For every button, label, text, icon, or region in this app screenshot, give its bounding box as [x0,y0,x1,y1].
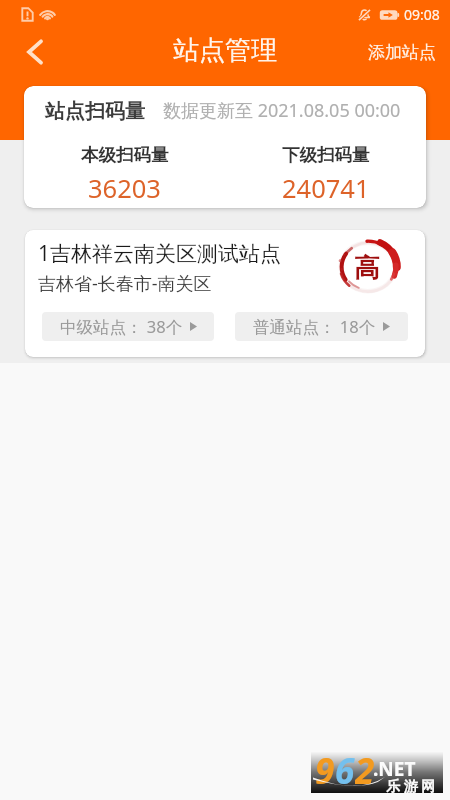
button[interactable]: Back [10,28,60,76]
staticText: 普通站点： 18个 [253,315,376,338]
staticText: 中级站点： 38个 [60,315,183,338]
staticText: 站点扫码量 [45,99,145,124]
button[interactable]: 中级站点： 38个 [42,312,214,341]
button[interactable]: 添加站点 [350,28,450,76]
staticText: 9 [315,747,335,789]
staticText: 添加站点 [368,42,436,63]
staticText: 36203 [88,171,161,206]
staticText: 乐 游 网 [386,776,436,795]
button[interactable]: 站点扫码量 [24,86,426,208]
staticText: 240741 [282,171,370,206]
staticText: 1吉林祥云南关区测试站点 [38,239,282,268]
staticText: 数据更新至 2021.08.05 00:00 [163,98,401,123]
staticText: 本级扫码量 [81,144,169,166]
staticText: .NET [373,756,416,782]
button[interactable]: 普通站点： 18个 [235,312,408,341]
staticText: 吉林省-长春市-南关区 [38,271,212,296]
button[interactable]: 1吉林祥云南关区测试站点 [25,230,425,357]
staticText: 6 [335,747,355,789]
staticText: 高 [354,252,380,285]
staticText: 站点管理 [173,34,277,67]
staticText: 09:08 [404,5,440,24]
staticText: 下级扫码量 [282,144,370,166]
staticText: 2 [355,747,375,789]
